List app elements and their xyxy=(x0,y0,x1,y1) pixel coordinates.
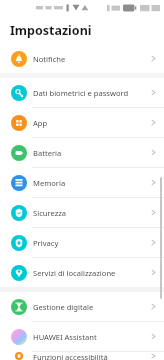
button[interactable]: HUAWEI Assistant xyxy=(0,322,164,351)
button[interactable]: Dati biometrici e password xyxy=(0,78,164,107)
staticText: Privacy xyxy=(33,238,59,248)
staticText: Servizi di localizzazione xyxy=(33,268,116,278)
button[interactable]: Servizi di localizzazione xyxy=(0,258,164,287)
staticText: Funzioni accessibilità xyxy=(33,352,108,360)
staticText: Batteria xyxy=(33,148,62,158)
button[interactable]: Funzioni accessibilità xyxy=(0,352,164,360)
button[interactable]: Memoria xyxy=(0,168,164,197)
button[interactable]: Notifiche xyxy=(0,44,164,73)
staticText: HUAWEI Assistant xyxy=(33,332,97,342)
button[interactable]: App xyxy=(0,108,164,137)
staticText: Impostazioni xyxy=(10,22,92,39)
button[interactable]: Gestione digitale xyxy=(0,292,164,321)
button[interactable]: Batteria xyxy=(0,138,164,167)
staticText: Gestione digitale xyxy=(33,302,94,312)
staticText: Memoria xyxy=(33,178,66,188)
staticText: Dati biometrici e password xyxy=(33,88,129,98)
button[interactable]: Sicurezza xyxy=(0,198,164,227)
button[interactable]: Privacy xyxy=(0,228,164,257)
staticText: App xyxy=(33,118,48,128)
staticText: Notifiche xyxy=(33,54,66,64)
staticText: Sicurezza xyxy=(33,208,67,218)
